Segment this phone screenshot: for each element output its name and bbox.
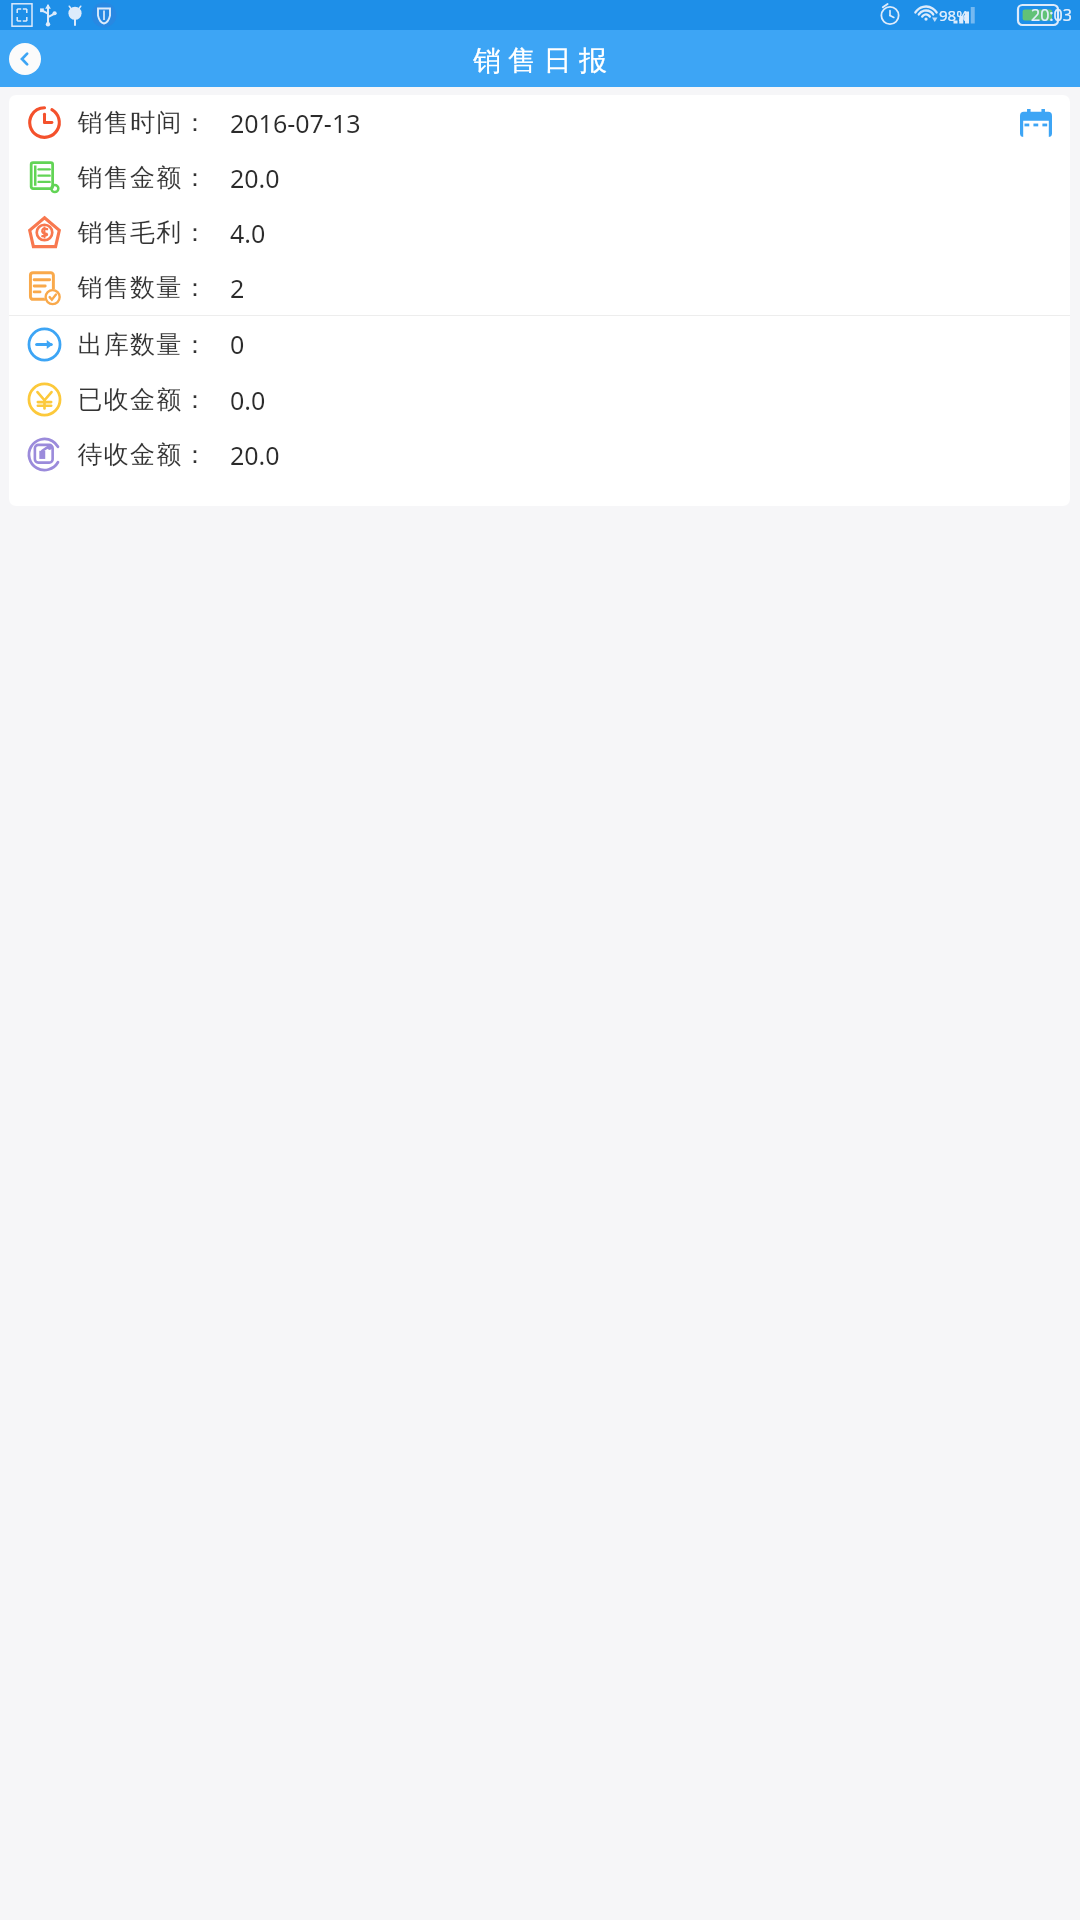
staticText: 20:03 [1031, 4, 1072, 26]
staticText: 销售时间： [77, 107, 208, 138]
button[interactable]: 销售毛利： [9, 205, 1070, 260]
button[interactable]: 出库数量： [9, 316, 1070, 372]
staticText: 销售数量： [77, 272, 208, 303]
staticText: 已收金额： [77, 384, 208, 415]
staticText: 20.0 [230, 161, 280, 195]
staticText: 98% [939, 5, 969, 25]
button[interactable]: 销售数量： [9, 260, 1070, 315]
button[interactable]: Pick date [1012, 99, 1060, 147]
button[interactable]: 待收金额： [9, 427, 1070, 482]
staticText: 待收金额： [77, 439, 208, 470]
staticText: 销售金额： [77, 162, 208, 193]
staticText: 销售毛利： [77, 217, 208, 248]
staticText: 0.0 [230, 383, 266, 417]
staticText: 4.0 [230, 216, 266, 250]
staticText: 2016-07-13 [230, 106, 361, 140]
staticText: 销 售 日 报 [473, 40, 607, 78]
button[interactable]: 销售时间： [9, 95, 1070, 150]
button[interactable]: 销售金额： [9, 150, 1070, 205]
staticText: 20.0 [230, 438, 280, 472]
staticText: 0 [230, 327, 245, 361]
button[interactable]: 已收金额： [9, 372, 1070, 427]
staticText: 2 [230, 271, 245, 305]
button[interactable]: Back [9, 43, 41, 75]
staticText: 出库数量： [77, 329, 208, 360]
